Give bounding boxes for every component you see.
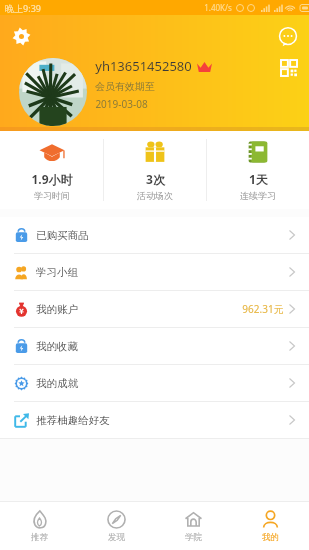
staticText: 962.31元 [242, 302, 284, 316]
staticText: 我的收藏 [36, 340, 78, 353]
button[interactable]: 我的收藏 [0, 328, 309, 364]
staticText: yh13651452580 [95, 57, 192, 75]
staticText: 学院 [185, 532, 202, 543]
staticText: 学习时间 [34, 190, 70, 201]
staticText: 推荐柚趣给好友 [36, 414, 110, 427]
staticText: 已购买商品 [36, 229, 89, 242]
button[interactable]: 已购买商品 [0, 217, 309, 253]
staticText: 我的成就 [36, 377, 78, 390]
button[interactable]: 3次 [104, 131, 206, 209]
button[interactable]: 学习小组 [0, 254, 309, 290]
staticText: 晚上9:39 [5, 2, 41, 14]
staticText: 学习小组 [36, 266, 78, 279]
staticText: 推荐 [31, 532, 48, 543]
staticText: 发现 [108, 532, 125, 543]
button[interactable]: 我的账户 [0, 291, 309, 327]
button[interactable]: 我的成就 [0, 365, 309, 401]
button[interactable]: Avatar [19, 58, 87, 126]
button[interactable]: 1天 [207, 131, 309, 209]
button[interactable]: 发现 [78, 502, 155, 550]
staticText: 2019-03-08 [95, 97, 148, 111]
staticText: 1天 [249, 171, 268, 187]
staticText: 3次 [146, 171, 165, 187]
button[interactable]: 学院 [155, 502, 232, 550]
staticText: 1.40K/s [204, 2, 232, 13]
button[interactable]: 我的 [232, 502, 309, 550]
button[interactable]: 推荐 [0, 502, 78, 550]
staticText: 活动场次 [137, 190, 173, 201]
button[interactable]: QR code [281, 60, 297, 76]
staticText: 我的账户 [36, 303, 78, 316]
button[interactable]: Messages [279, 28, 297, 46]
staticText: 我的 [262, 532, 279, 543]
staticText: 会员有效期至 [95, 80, 155, 93]
staticText: 连续学习 [240, 190, 276, 201]
button[interactable]: 推荐柚趣给好友 [0, 402, 309, 438]
button[interactable]: Settings [12, 27, 31, 46]
button[interactable]: 1.9小时 [0, 131, 103, 209]
staticText: 1.9小时 [31, 171, 73, 187]
